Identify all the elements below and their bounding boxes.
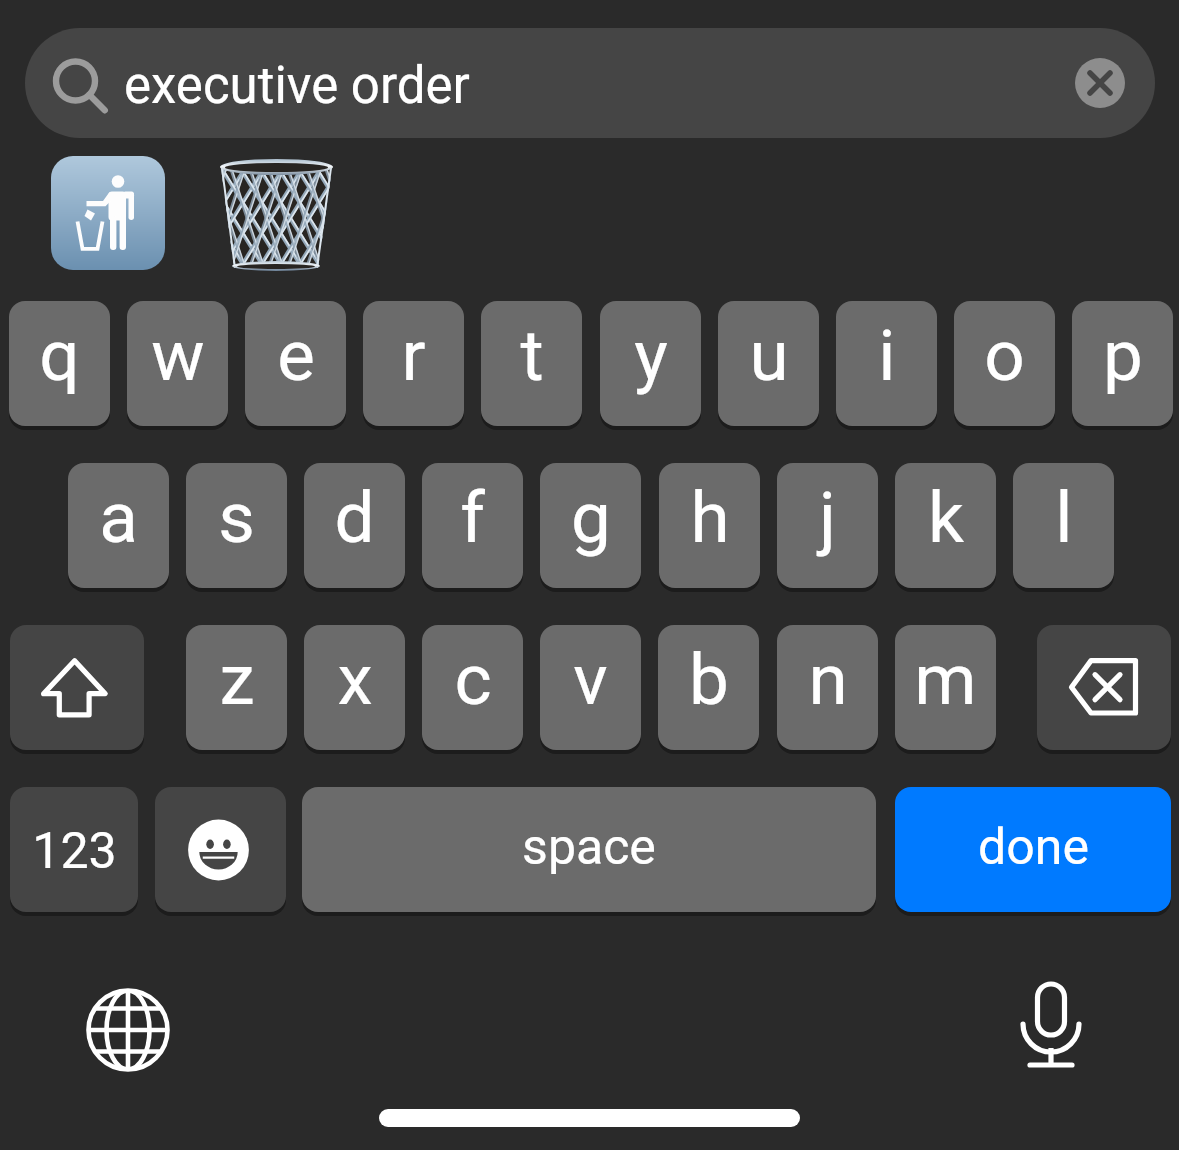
staticText: j [819, 476, 836, 559]
button[interactable]: h [659, 463, 760, 588]
staticText: p [1103, 314, 1143, 397]
staticText: e [277, 314, 315, 397]
button[interactable]: Wastebasket [217, 158, 337, 280]
staticText: executive order [124, 56, 470, 116]
button[interactable]: v [540, 625, 641, 750]
button[interactable]: Litter in bin sign [51, 156, 165, 270]
staticText: a [99, 476, 138, 559]
button[interactable]: w [127, 301, 228, 426]
button[interactable]: z [186, 625, 287, 750]
button[interactable]: Emoji [155, 787, 286, 912]
button[interactable]: u [718, 301, 819, 426]
staticText: g [571, 476, 611, 559]
button[interactable]: c [422, 625, 523, 750]
button[interactable]: d [304, 463, 405, 588]
staticText: o [984, 314, 1025, 397]
button[interactable]: k [895, 463, 996, 588]
button[interactable]: j [777, 463, 878, 588]
staticText: m [914, 638, 977, 721]
staticText: y [634, 314, 668, 397]
staticText: i [878, 314, 896, 397]
button[interactable]: m [895, 625, 996, 750]
button[interactable]: f [422, 463, 523, 588]
button[interactable]: q [9, 301, 110, 426]
staticText: f [460, 476, 485, 559]
button[interactable]: b [658, 625, 759, 750]
button[interactable]: done [895, 787, 1171, 912]
button[interactable]: i [836, 301, 937, 426]
button[interactable]: o [954, 301, 1055, 426]
button[interactable]: p [1072, 301, 1173, 426]
button[interactable]: executive order [25, 28, 1155, 138]
staticText: x [337, 638, 373, 721]
staticText: t [520, 314, 544, 397]
button[interactable]: a [68, 463, 169, 588]
staticText: done [978, 818, 1089, 877]
staticText: l [1055, 476, 1073, 559]
button[interactable]: Backspace [1037, 625, 1171, 750]
staticText: z [219, 638, 255, 721]
button[interactable]: r [363, 301, 464, 426]
button[interactable]: Shift [10, 625, 144, 750]
button[interactable]: t [481, 301, 582, 426]
staticText: u [749, 314, 789, 397]
button[interactable]: e [245, 301, 346, 426]
staticText: s [218, 476, 255, 559]
button[interactable]: 123 [10, 787, 138, 912]
staticText: w [151, 314, 205, 397]
staticText: v [573, 638, 608, 721]
button[interactable]: s [186, 463, 287, 588]
button[interactable]: Dictate [990, 963, 1112, 1085]
button[interactable]: y [600, 301, 701, 426]
staticText: c [454, 638, 492, 721]
staticText: n [808, 638, 848, 721]
button[interactable]: space [302, 787, 876, 912]
staticText: h [690, 476, 730, 559]
button[interactable]: x [304, 625, 405, 750]
staticText: b [689, 638, 729, 721]
staticText: space [522, 818, 656, 877]
button[interactable]: Clear [1075, 58, 1125, 108]
button[interactable]: n [777, 625, 878, 750]
button[interactable]: g [540, 463, 641, 588]
staticText: 123 [32, 822, 117, 881]
button[interactable]: l [1013, 463, 1114, 588]
button[interactable]: Switch keyboard [67, 969, 189, 1091]
staticText: k [928, 476, 964, 559]
staticText: r [401, 314, 426, 397]
staticText: d [334, 476, 375, 559]
staticText: q [39, 314, 80, 397]
